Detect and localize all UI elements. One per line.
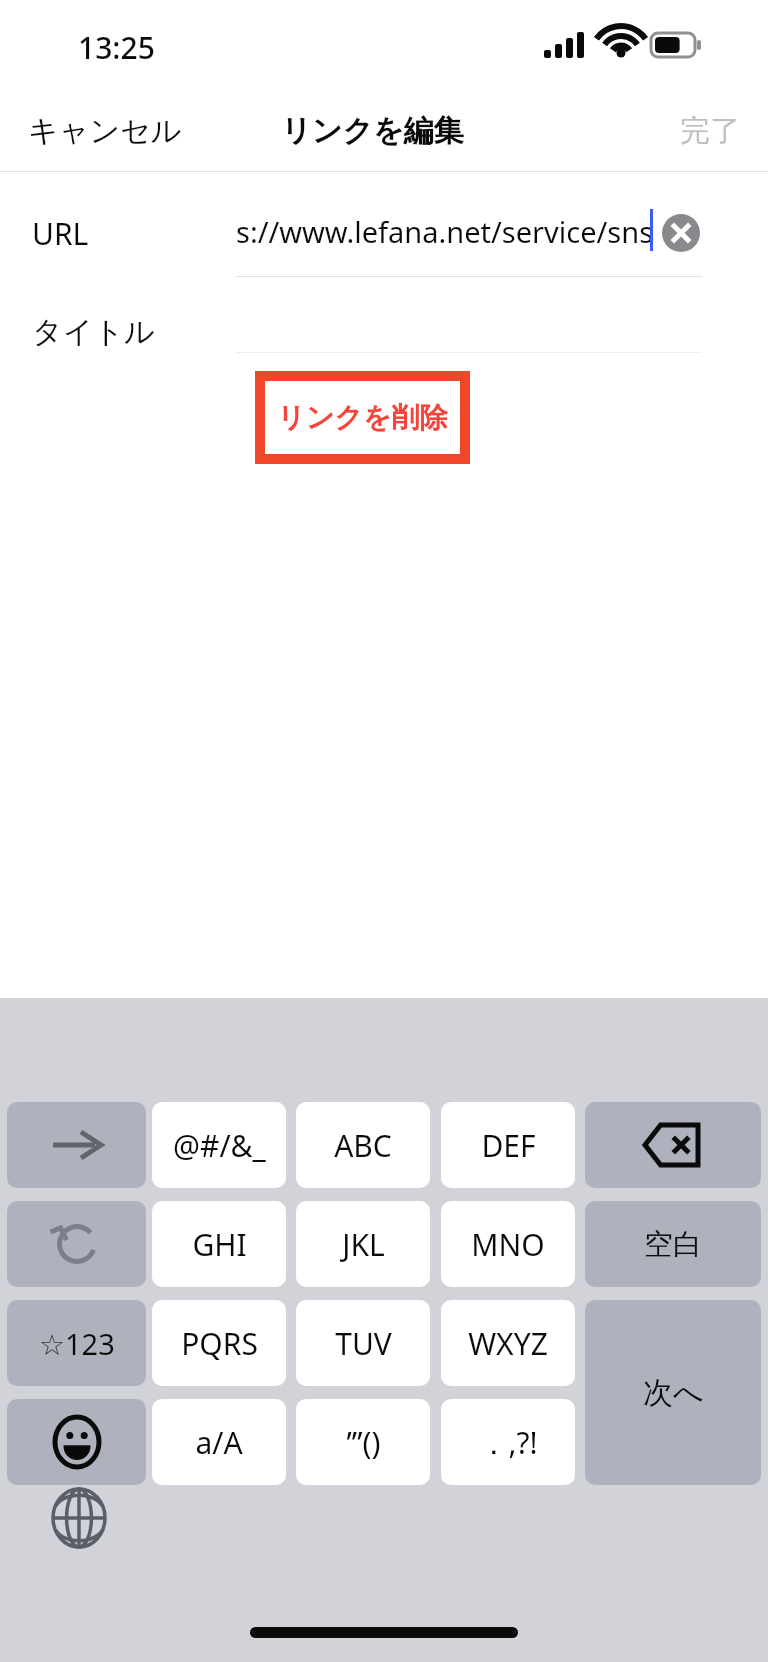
staticText: @#/&_ bbox=[173, 1125, 266, 1166]
button[interactable]: MNO bbox=[441, 1201, 575, 1287]
staticText: a/A bbox=[195, 1422, 243, 1463]
staticText: PQRS bbox=[181, 1323, 258, 1364]
button[interactable]: JKL bbox=[296, 1201, 430, 1287]
button[interactable]: 取り消し bbox=[7, 1201, 146, 1287]
button[interactable]: クリア bbox=[660, 212, 702, 254]
staticText: タイトル bbox=[32, 313, 155, 351]
button[interactable]: WXYZ bbox=[441, 1300, 575, 1386]
staticText: ．,?! bbox=[478, 1422, 538, 1463]
button[interactable]: DEF bbox=[441, 1102, 575, 1188]
button[interactable]: リンクを削除 bbox=[255, 371, 470, 464]
staticText: リンクを削除 bbox=[277, 400, 448, 435]
button[interactable]: PQRS bbox=[152, 1300, 286, 1386]
staticText: キャンセル bbox=[28, 112, 182, 150]
staticText: GHI bbox=[192, 1224, 247, 1265]
button[interactable]: @#/&_ bbox=[152, 1102, 286, 1188]
staticText: ☆123 bbox=[39, 1324, 115, 1363]
button[interactable]: 次へ bbox=[585, 1300, 761, 1485]
button[interactable]: ☆123 bbox=[7, 1300, 146, 1386]
staticText: ABC bbox=[334, 1125, 392, 1166]
button[interactable]: 空白 bbox=[585, 1201, 761, 1287]
staticText: 完了 bbox=[680, 112, 740, 150]
button[interactable]: 削除 bbox=[585, 1102, 761, 1188]
button[interactable]: キャンセル bbox=[22, 108, 188, 154]
staticText: 空白 bbox=[644, 1226, 702, 1263]
staticText: 13:25 bbox=[78, 27, 155, 68]
button[interactable]: 絵文字 bbox=[7, 1399, 146, 1485]
button[interactable]: カーソル右 bbox=[7, 1102, 146, 1188]
staticText: JKL bbox=[342, 1224, 385, 1265]
staticText: TUV bbox=[335, 1323, 392, 1364]
button[interactable]: TUV bbox=[296, 1300, 430, 1386]
staticText: s://www.lefana.net/service/sns bbox=[236, 212, 654, 251]
staticText: WXYZ bbox=[468, 1323, 548, 1364]
staticText: リンクを編集 bbox=[281, 112, 464, 150]
staticText: ’”() bbox=[346, 1422, 381, 1463]
button[interactable]: 完了 bbox=[674, 108, 746, 154]
button[interactable]: キーボード切り替え bbox=[36, 1475, 122, 1561]
staticText: MNO bbox=[471, 1224, 545, 1265]
button[interactable]: GHI bbox=[152, 1201, 286, 1287]
staticText: DEF bbox=[481, 1125, 536, 1166]
button[interactable]: ABC bbox=[296, 1102, 430, 1188]
staticText: URL bbox=[32, 213, 89, 254]
staticText: 次へ bbox=[643, 1374, 704, 1412]
button[interactable]: ．,?! bbox=[441, 1399, 575, 1485]
button[interactable]: ’”() bbox=[296, 1399, 430, 1485]
button[interactable]: a/A bbox=[152, 1399, 286, 1485]
